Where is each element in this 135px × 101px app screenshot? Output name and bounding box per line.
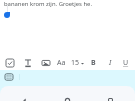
button[interactable]: Italic	[102, 56, 118, 70]
staticText: U	[123, 58, 129, 68]
staticText: I	[109, 58, 112, 68]
staticText: 15	[71, 58, 80, 68]
button[interactable]: Underline	[118, 56, 134, 70]
button[interactable]: Clear formatting	[20, 56, 36, 70]
button[interactable]: Text size	[70, 56, 84, 70]
staticText: B	[91, 58, 96, 68]
staticText: Aa	[57, 58, 66, 68]
button[interactable]: Home	[61, 94, 73, 101]
staticText: bananen krom zijn. Groetjes he.	[4, 0, 92, 8]
button[interactable]: Font style	[53, 56, 69, 70]
button[interactable]: Bold	[85, 56, 101, 70]
button[interactable]: Back	[18, 94, 30, 101]
button[interactable]: Checklist	[2, 56, 18, 70]
other: Selection handle	[4, 12, 10, 18]
button[interactable]: Keyboard	[3, 71, 15, 83]
button[interactable]: Insert image	[38, 56, 54, 70]
button[interactable]: Recents	[104, 94, 116, 101]
